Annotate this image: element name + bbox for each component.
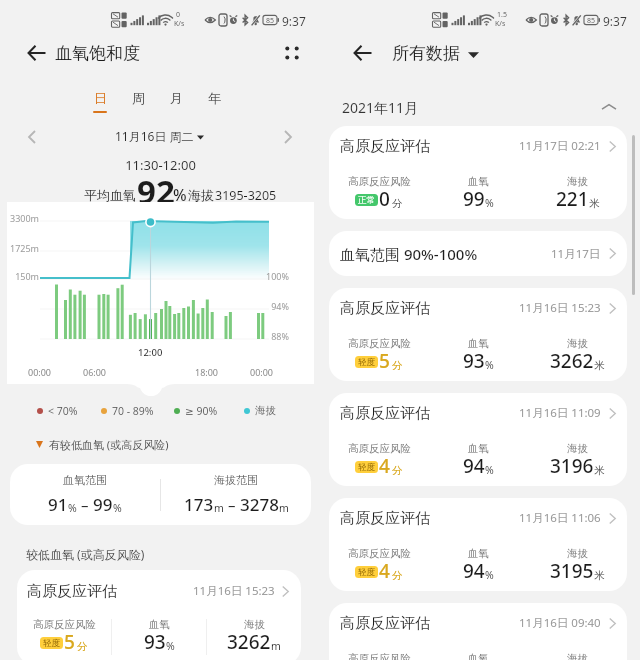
staticText: 米	[589, 197, 600, 210]
staticText: 血氧	[468, 337, 489, 350]
staticText: %	[68, 501, 77, 515]
staticText: 3195	[550, 558, 594, 584]
staticText: < 70%	[48, 404, 78, 418]
staticText: 高原反应风险	[348, 547, 411, 560]
button[interactable]: 高原反应评估	[17, 570, 301, 660]
staticText: 3262	[227, 629, 271, 655]
button[interactable]: 高原反应评估	[329, 393, 627, 486]
staticText: 93	[144, 629, 166, 655]
staticText: %	[485, 196, 494, 210]
button[interactable]: Collapse	[598, 96, 620, 118]
staticText: 较低血氧 (或高反风险)	[26, 546, 145, 562]
staticText: 血氧范围 90%-100%	[340, 244, 478, 264]
staticText: 正常	[358, 195, 375, 206]
staticText: %	[485, 358, 494, 372]
button[interactable]: 月	[157, 90, 195, 118]
staticText: 分	[392, 359, 403, 372]
staticText: %	[173, 184, 187, 206]
staticText: 高原反应风险	[348, 442, 411, 455]
button[interactable]: 高原反应评估	[329, 288, 627, 381]
staticText: 1.5	[497, 10, 507, 20]
staticText: 高原反应风险	[348, 652, 411, 660]
staticText: 99	[93, 493, 113, 516]
staticText: 18:00	[195, 366, 219, 378]
button[interactable]: 年	[195, 90, 233, 118]
staticText: 高原反应评估	[340, 137, 430, 156]
staticText: 有较低血氧 (或高反风险)	[49, 437, 169, 452]
button[interactable]: 高原反应评估	[329, 603, 627, 660]
staticText: 00:00	[28, 366, 52, 378]
staticText: 高原反应评估	[340, 509, 430, 528]
button[interactable]: Back	[22, 38, 52, 68]
staticText: 173	[184, 493, 214, 516]
button[interactable]: 高原反应评估	[329, 126, 627, 219]
staticText: 分	[392, 464, 403, 477]
staticText: 3196	[550, 453, 594, 479]
staticText: 海拔	[567, 175, 588, 188]
staticText: 11月16日 15:23	[193, 583, 275, 599]
staticText: –	[77, 495, 93, 515]
staticText: 日	[94, 90, 107, 106]
button[interactable]: 血氧范围 90%-100%	[329, 231, 627, 276]
staticText: 11月16日 周二	[115, 128, 194, 144]
button[interactable]: 血氧范围	[10, 464, 311, 525]
button[interactable]: 日	[81, 90, 119, 118]
staticText: 血氧	[468, 175, 489, 188]
staticText: 海拔	[244, 618, 265, 631]
button[interactable]: 高原反应评估	[329, 498, 627, 591]
staticText: 0	[379, 186, 390, 212]
staticText: 分	[392, 569, 403, 582]
staticText: 3278	[240, 493, 279, 516]
button[interactable]: 周	[119, 90, 157, 118]
button[interactable]: Previous day	[19, 124, 45, 150]
staticText: 高原反应评估	[340, 299, 430, 318]
staticText: 血氧	[468, 442, 489, 455]
staticText: 所有数据	[392, 43, 460, 64]
staticText: 血氧	[149, 618, 170, 631]
button[interactable]: Back	[348, 38, 378, 68]
staticText: 海拔	[567, 652, 588, 660]
staticText: %	[166, 639, 175, 653]
staticText: 00:00	[250, 366, 274, 378]
staticText: m	[271, 639, 281, 653]
staticText: 1725m	[7, 242, 39, 254]
staticText: 0	[176, 10, 181, 20]
staticText: %	[485, 568, 494, 582]
staticText: 轻度	[43, 638, 60, 649]
staticText: 11月16日 09:40	[519, 615, 601, 631]
staticText: 海拔	[255, 404, 276, 417]
staticText: 94	[463, 558, 485, 584]
staticText: 11月17日	[551, 246, 601, 262]
button[interactable]: More options	[277, 38, 307, 68]
staticText: 周	[132, 90, 145, 106]
staticText: 221	[556, 186, 589, 212]
staticText: m	[214, 501, 224, 515]
button[interactable]: 11月16日 周二	[115, 128, 204, 144]
staticText: 米	[594, 359, 605, 372]
staticText: 月	[170, 90, 183, 106]
button[interactable]: Next day	[275, 124, 301, 150]
staticText: 5	[379, 348, 390, 374]
staticText: 11月16日 11:09	[519, 405, 601, 421]
staticText: 血氧饱和度	[55, 43, 140, 64]
staticText: 血氧	[468, 652, 489, 660]
staticText: 3300m	[7, 212, 39, 224]
staticText: 100%	[229, 270, 289, 282]
staticText: 88%	[229, 330, 289, 342]
staticText: 11:30-12:00	[0, 156, 321, 174]
staticText: 高原反应风险	[348, 175, 411, 188]
staticText: 5	[64, 629, 75, 655]
staticText: 94	[463, 453, 485, 479]
button[interactable]: 所有数据	[392, 43, 479, 64]
staticText: 93	[463, 348, 485, 374]
staticText: 91	[48, 493, 68, 516]
staticText: 海拔	[567, 337, 588, 350]
staticText: 血氧	[468, 547, 489, 560]
staticText: 70 - 89%	[112, 404, 154, 418]
staticText: 分	[77, 640, 88, 653]
staticText: %	[113, 501, 122, 515]
staticText: 血氧范围	[63, 473, 107, 487]
staticText: K/s	[174, 19, 185, 29]
staticText: 轻度	[358, 357, 375, 368]
staticText: 4	[379, 558, 390, 584]
